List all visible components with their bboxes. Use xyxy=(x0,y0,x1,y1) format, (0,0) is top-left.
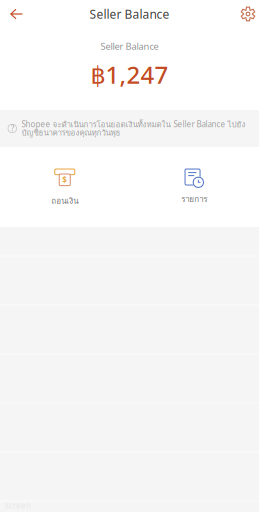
staticText: Shopee จะดำเนินการโอนยอดเงินทั้งหมดใน Se… xyxy=(21,118,245,139)
button[interactable]: Settings xyxy=(237,0,259,28)
button[interactable]: รายการ xyxy=(129,147,259,227)
staticText: ฿1,247 xyxy=(90,58,168,90)
staticText: screen xyxy=(5,500,31,511)
staticText: รายการ xyxy=(181,193,207,205)
staticText: $ xyxy=(62,174,67,185)
button[interactable]: ถอนเงิน xyxy=(0,147,129,227)
button[interactable]: Back xyxy=(3,0,30,28)
staticText: Seller Balance xyxy=(100,40,158,52)
staticText: ถอนเงิน xyxy=(51,195,78,207)
staticText: Seller Balance xyxy=(89,6,169,22)
staticText: ? xyxy=(11,123,14,134)
